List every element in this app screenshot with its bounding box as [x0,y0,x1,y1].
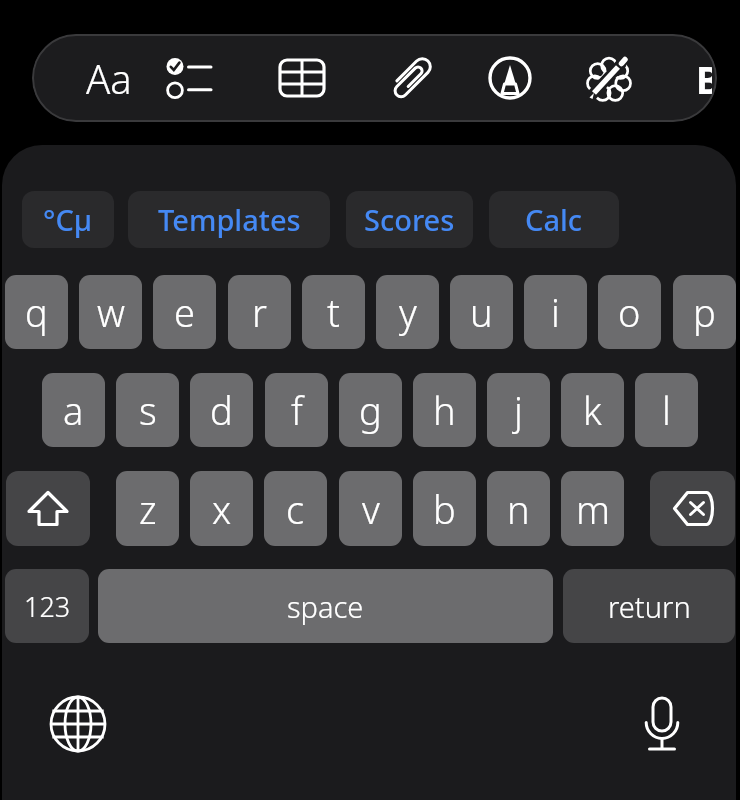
staticText: Calc [525,200,583,239]
button[interactable]: Aa [78,48,140,108]
staticText: t [327,286,340,338]
button[interactable]: Scores [346,191,473,248]
button[interactable]: s [116,373,179,447]
button[interactable]: return [563,569,735,643]
button[interactable] [156,46,220,110]
button[interactable] [270,46,334,110]
button[interactable]: x [190,471,253,546]
button[interactable]: l [635,373,698,447]
button[interactable]: a [42,373,105,447]
button[interactable]: e [153,275,216,349]
staticText: f [291,384,303,436]
button[interactable]: 123 [5,569,89,643]
staticText: space [287,587,364,626]
button[interactable] [636,692,688,756]
button[interactable] [48,694,108,754]
button[interactable]: g [339,373,402,447]
staticText: k [583,384,602,436]
staticText: g [359,384,382,436]
button[interactable]: y [376,275,439,349]
staticText: i [551,286,560,338]
button[interactable]: u [450,275,513,349]
button[interactable]: d [190,373,253,447]
button[interactable]: B [696,54,712,94]
staticText: o [618,286,641,338]
button[interactable]: q [5,275,68,349]
button[interactable]: t [302,275,365,349]
staticText: s [139,384,157,436]
staticText: v [362,483,380,535]
staticText: m [576,483,610,535]
button[interactable]: °Cµ [22,191,114,248]
button[interactable] [6,471,90,546]
button[interactable]: v [339,471,402,546]
staticText: a [63,384,84,436]
button[interactable]: f [265,373,328,447]
button[interactable]: p [673,275,736,349]
button[interactable]: m [561,471,624,546]
staticText: l [662,384,671,436]
staticText: b [433,483,456,535]
button[interactable]: z [116,471,179,546]
staticText: Templates [158,200,301,239]
button[interactable]: i [524,275,587,349]
staticText: B [696,54,712,94]
staticText: n [507,483,530,535]
staticText: e [174,286,195,338]
staticText: q [25,286,48,338]
button[interactable] [577,46,641,110]
staticText: °Cµ [43,200,93,239]
staticText: Scores [364,200,455,239]
button[interactable] [650,471,735,546]
staticText: return [608,587,691,626]
staticText: p [693,286,716,338]
staticText: w [97,286,125,338]
staticText: 123 [24,588,71,625]
button[interactable]: r [228,275,291,349]
staticText: z [139,483,157,535]
staticText: Aa [86,51,132,105]
staticText: y [399,286,417,338]
staticText: j [514,384,523,436]
staticText: r [252,286,267,338]
staticText: d [210,384,233,436]
button[interactable]: k [561,373,624,447]
staticText: u [470,286,493,338]
button[interactable]: n [487,471,550,546]
button[interactable]: Calc [489,191,619,248]
staticText: h [433,384,456,436]
button[interactable]: j [487,373,550,447]
button[interactable]: c [264,471,327,546]
button[interactable]: w [79,275,142,349]
button[interactable]: Templates [128,191,330,248]
staticText: c [286,483,305,535]
staticText: x [212,483,232,535]
button[interactable]: o [598,275,661,349]
button[interactable]: b [413,471,476,546]
button[interactable]: h [413,373,476,447]
button[interactable] [379,46,443,110]
button[interactable]: space [98,569,553,643]
button[interactable] [478,46,542,110]
